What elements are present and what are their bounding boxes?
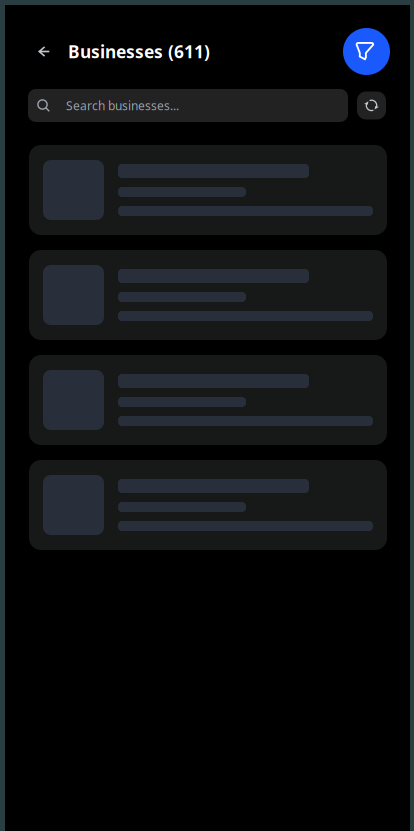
- button[interactable]: Back: [30, 36, 58, 66]
- button[interactable]: Filter: [343, 28, 390, 75]
- button[interactable]: Refresh: [357, 91, 386, 119]
- button[interactable]: [29, 355, 387, 445]
- button[interactable]: [29, 145, 387, 235]
- button[interactable]: [29, 250, 387, 340]
- staticText: Search businesses...: [66, 97, 179, 113]
- staticText: Businesses (611): [68, 40, 210, 63]
- button[interactable]: [29, 460, 387, 550]
